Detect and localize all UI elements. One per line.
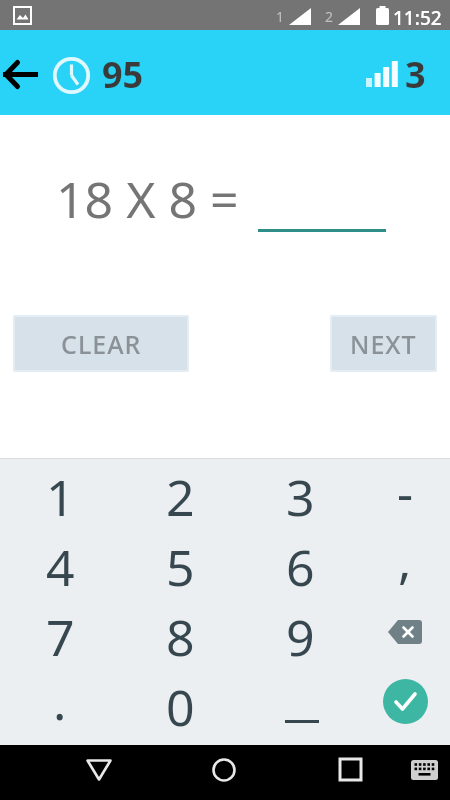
button[interactable]: 1 bbox=[4, 462, 116, 532]
button[interactable]: 8 bbox=[124, 602, 236, 672]
staticText: 9 bbox=[286, 603, 315, 671]
staticText: 5 bbox=[166, 533, 195, 601]
button[interactable]: 3 bbox=[244, 462, 356, 532]
button[interactable]: 9 bbox=[244, 602, 356, 672]
staticText: 4 bbox=[46, 533, 75, 601]
staticText: NEXT bbox=[350, 327, 417, 361]
button[interactable] bbox=[194, 745, 254, 800]
staticText: 1 bbox=[276, 7, 285, 26]
button[interactable] bbox=[355, 602, 450, 672]
button[interactable]: 2 bbox=[124, 462, 236, 532]
staticText: - bbox=[397, 458, 414, 526]
button[interactable]: - bbox=[349, 462, 450, 532]
button[interactable]: 6 bbox=[244, 532, 356, 602]
button[interactable]: 4 bbox=[4, 532, 116, 602]
staticText: , bbox=[398, 526, 412, 594]
staticText: 6 bbox=[286, 533, 315, 601]
button[interactable]: NEXT bbox=[330, 315, 437, 372]
staticText: 3 bbox=[405, 50, 426, 99]
staticText: CLEAR bbox=[61, 327, 142, 361]
staticText: 3 bbox=[286, 463, 315, 531]
staticText: 18 X 8 = bbox=[56, 165, 239, 225]
button[interactable] bbox=[244, 672, 356, 742]
button[interactable] bbox=[0, 53, 46, 95]
staticText: 2 bbox=[166, 463, 195, 531]
button[interactable] bbox=[69, 745, 129, 800]
button[interactable] bbox=[404, 745, 444, 800]
staticText: 0 bbox=[166, 673, 195, 741]
button[interactable]: . bbox=[4, 672, 116, 742]
staticText: 11:52 bbox=[393, 5, 442, 31]
staticText: 7 bbox=[46, 603, 75, 671]
staticText: 1 bbox=[46, 463, 75, 531]
staticText: . bbox=[53, 667, 67, 735]
button[interactable]: CLEAR bbox=[13, 315, 189, 372]
button[interactable]: 7 bbox=[4, 602, 116, 672]
staticText: 95 bbox=[102, 50, 144, 99]
button[interactable] bbox=[355, 672, 450, 742]
button[interactable]: 0 bbox=[124, 672, 236, 742]
button[interactable] bbox=[320, 745, 380, 800]
button[interactable]: , bbox=[349, 532, 450, 602]
button[interactable]: 5 bbox=[124, 532, 236, 602]
staticText: 2 bbox=[325, 7, 334, 26]
staticText: 8 bbox=[166, 603, 195, 671]
